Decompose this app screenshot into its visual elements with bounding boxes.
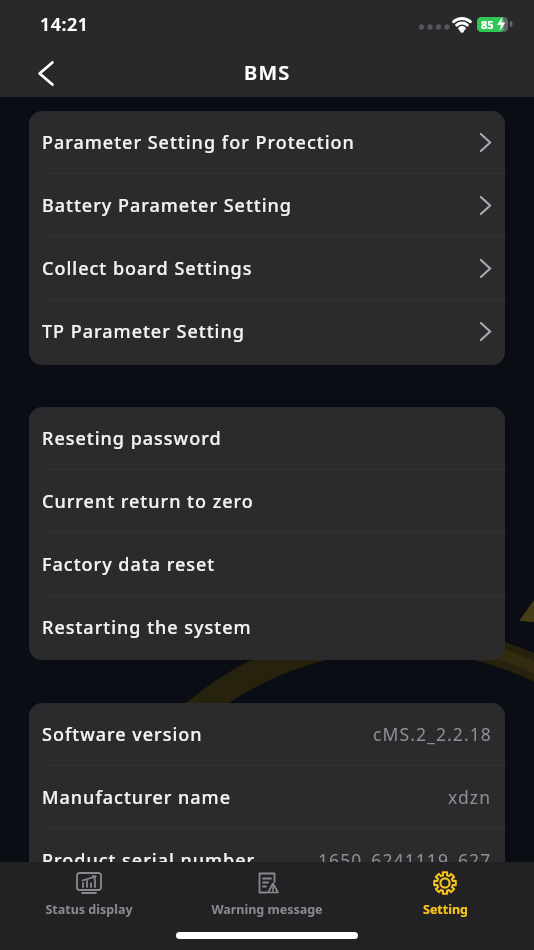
button[interactable]: TP Parameter Setting	[29, 300, 505, 363]
button[interactable]: Collect board Settings	[29, 237, 505, 299]
button[interactable]: Factory data reset	[29, 533, 505, 595]
staticText: cMS.2_2.2.18	[373, 722, 492, 746]
staticText: xdzn	[448, 785, 492, 809]
staticText: Restarting the system	[42, 615, 252, 640]
staticText: Reseting password	[42, 426, 222, 451]
staticText: Parameter Setting for Protection	[42, 130, 355, 155]
button[interactable]: Status display	[0, 870, 178, 918]
staticText: TP Parameter Setting	[42, 319, 245, 344]
button[interactable]: Current return to zero	[29, 470, 505, 532]
button[interactable]	[30, 57, 62, 89]
staticText: 1650_6241119_627	[318, 848, 492, 872]
staticText: Warning message	[211, 901, 323, 918]
staticText: 85	[481, 17, 494, 32]
staticText: Current return to zero	[42, 489, 254, 514]
staticText: BMS	[244, 59, 291, 86]
button[interactable]: Software version	[29, 703, 505, 765]
staticText: Setting	[423, 901, 468, 918]
button[interactable]: Battery Parameter Setting	[29, 174, 505, 236]
staticText: Software version	[42, 722, 203, 747]
staticText: Battery Parameter Setting	[42, 193, 293, 218]
staticText: Factory data reset	[42, 552, 216, 577]
button[interactable]: Manufacturer name	[29, 766, 505, 828]
staticText: Status display	[45, 901, 133, 918]
staticText: Manufacturer name	[42, 785, 231, 810]
staticText: 14:21	[40, 12, 89, 37]
button[interactable]: Reseting password	[29, 407, 505, 469]
button[interactable]: Product serial number	[29, 829, 505, 891]
button[interactable]: Parameter Setting for Protection	[29, 111, 505, 173]
button[interactable]: Restarting the system	[29, 596, 505, 659]
staticText: Collect board Settings	[42, 256, 253, 281]
staticText: Product serial number	[42, 848, 256, 873]
button[interactable]: Setting	[356, 870, 534, 918]
button[interactable]: Warning message	[178, 870, 356, 918]
